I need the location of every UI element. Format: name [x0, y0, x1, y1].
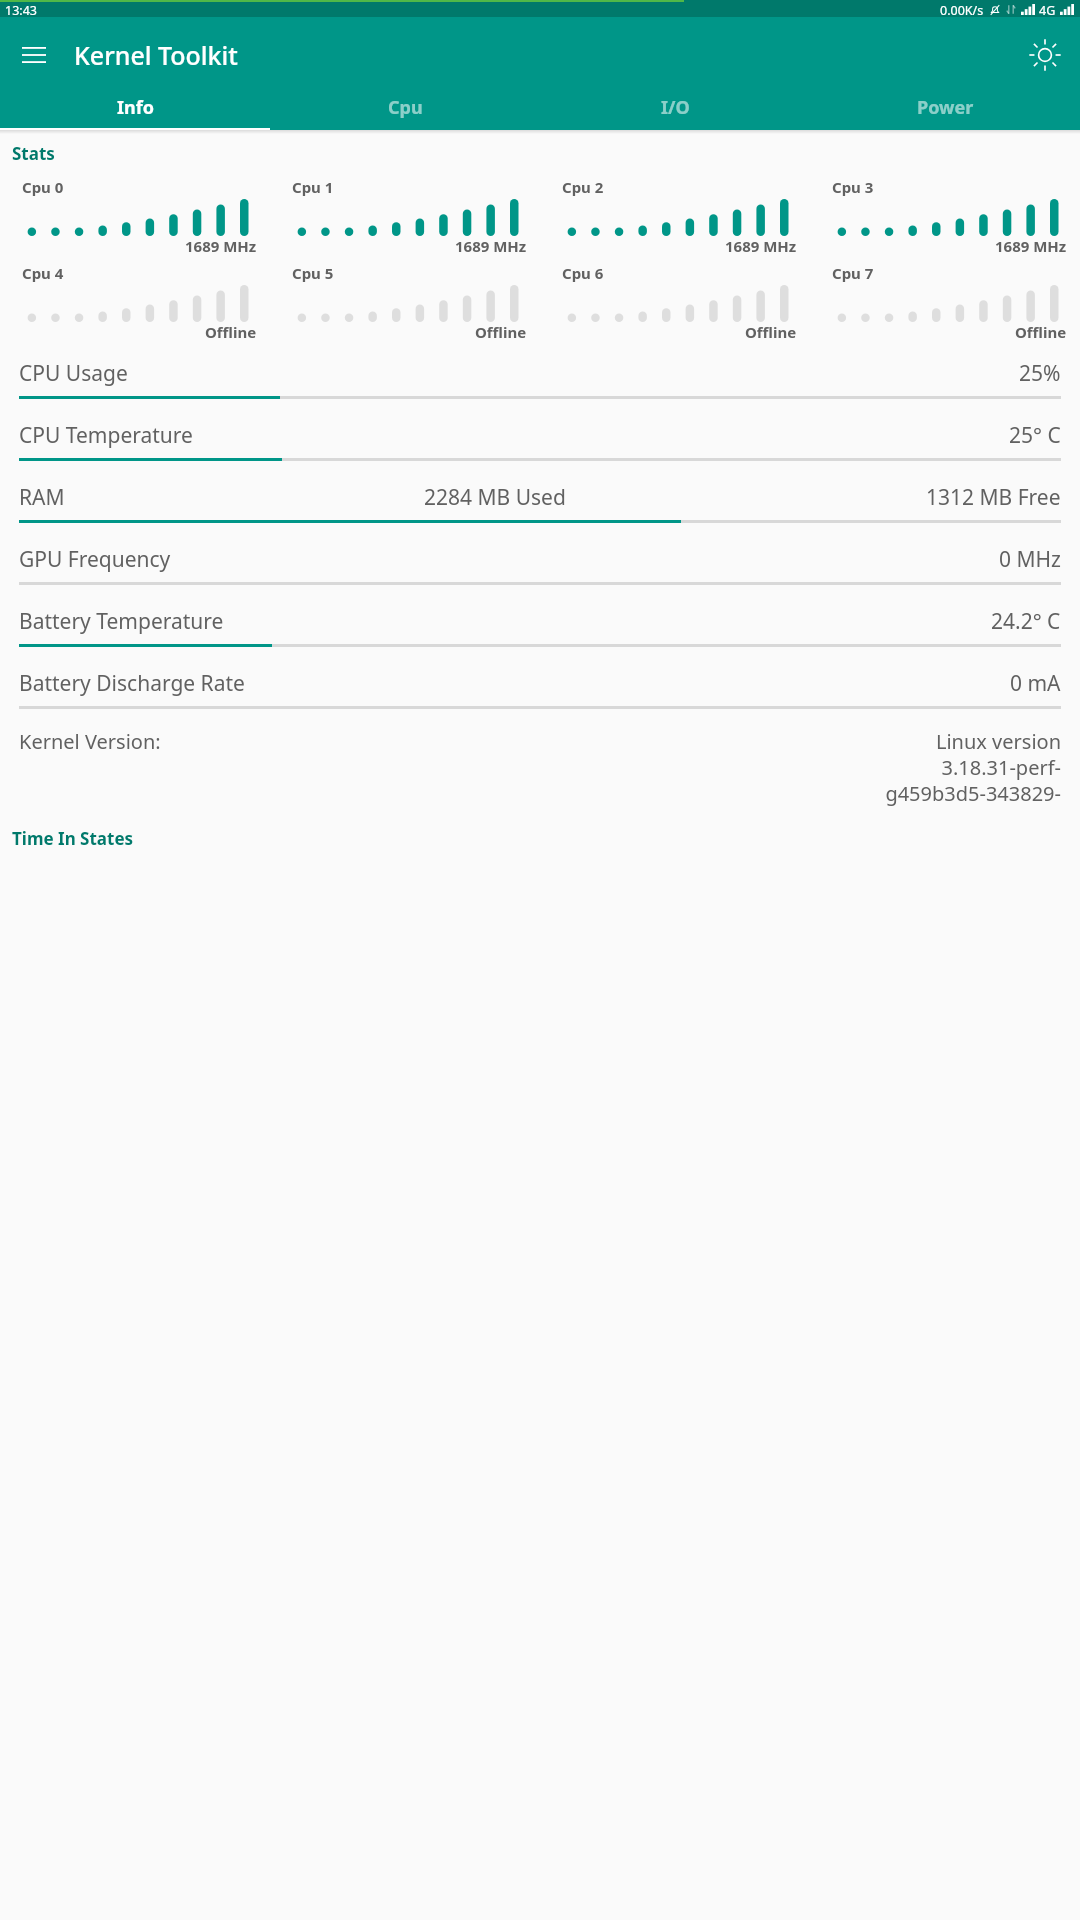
staticText: Offline — [1015, 322, 1067, 342]
button[interactable]: Battery Discharge Rate — [0, 661, 1080, 723]
button[interactable]: Cpu 0 — [0, 177, 270, 256]
staticText: Linux version 3.18.31-perf-g459b3d5-3438… — [868, 728, 1061, 807]
button[interactable]: Cpu 6 — [540, 263, 810, 342]
staticText: 4G — [1039, 2, 1056, 17]
staticText: 0.00K/s — [940, 2, 984, 17]
staticText: Cpu 2 — [562, 177, 604, 197]
staticText: 1689 MHz — [185, 236, 257, 256]
staticText: GPU Frequency — [19, 545, 171, 574]
staticText: 1312 MB Free — [926, 483, 1061, 512]
staticText: Stats — [12, 142, 55, 165]
button[interactable]: I/O — [540, 93, 810, 130]
button[interactable]: CPU Temperature — [0, 413, 1080, 475]
staticText: 24.2° C — [991, 607, 1061, 636]
staticText: 25% — [1019, 359, 1061, 388]
button[interactable]: Toggle dark theme — [1021, 31, 1069, 79]
button[interactable]: Cpu 3 — [810, 177, 1080, 256]
staticText: Time In States — [12, 827, 134, 850]
staticText: 25° C — [1009, 421, 1061, 450]
button[interactable]: Open navigation drawer — [11, 32, 57, 78]
button[interactable]: Cpu 1 — [270, 177, 540, 256]
staticText: Battery Temperature — [19, 607, 224, 636]
staticText: Power — [917, 95, 974, 120]
staticText: Cpu 4 — [22, 263, 64, 283]
staticText: 1689 MHz — [725, 236, 797, 256]
staticText: Info — [117, 95, 154, 120]
staticText: 0 MHz — [999, 545, 1061, 574]
staticText: Cpu — [388, 95, 423, 120]
staticText: Cpu 1 — [292, 177, 334, 197]
staticText: Offline — [475, 322, 527, 342]
button[interactable]: Cpu 2 — [540, 177, 810, 256]
button[interactable]: Info — [0, 93, 270, 130]
staticText: Offline — [205, 322, 257, 342]
staticText: I/O — [661, 95, 690, 120]
staticText: Kernel Version: — [19, 728, 161, 755]
staticText: Cpu 7 — [832, 263, 874, 283]
button[interactable]: Battery Temperature — [0, 599, 1080, 661]
staticText: 0 mA — [1010, 669, 1061, 698]
button[interactable]: CPU Usage — [0, 351, 1080, 413]
staticText: CPU Temperature — [19, 421, 193, 450]
staticText: Cpu 6 — [562, 263, 604, 283]
staticText: 1689 MHz — [455, 236, 527, 256]
staticText: Battery Discharge Rate — [19, 669, 245, 698]
staticText: Cpu 0 — [22, 177, 64, 197]
staticText: Offline — [745, 322, 797, 342]
staticText: 2284 MB Used — [424, 483, 566, 512]
staticText: 13:43 — [5, 2, 37, 17]
staticText: 1689 MHz — [995, 236, 1067, 256]
button[interactable]: Cpu 5 — [270, 263, 540, 342]
button[interactable]: Cpu 4 — [0, 263, 270, 342]
staticText: Kernel Toolkit — [74, 38, 238, 72]
staticText: CPU Usage — [19, 359, 128, 388]
button[interactable]: GPU Frequency — [0, 537, 1080, 599]
button[interactable]: RAM — [0, 475, 1080, 537]
staticText: Cpu 3 — [832, 177, 874, 197]
button[interactable]: Cpu 7 — [810, 263, 1080, 342]
staticText: Cpu 5 — [292, 263, 334, 283]
button[interactable]: Cpu — [270, 93, 540, 130]
button[interactable]: Power — [810, 93, 1080, 130]
staticText: RAM — [19, 483, 65, 512]
